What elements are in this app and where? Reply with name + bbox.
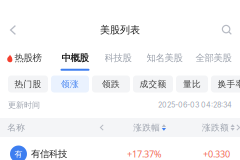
staticText: 全部美股 [195,52,231,64]
button[interactable]: 全部美股 [195,41,231,71]
staticText: +0.330 [203,148,230,160]
button[interactable]: 热门股 [8,75,48,92]
staticText: 换手率 [217,78,240,89]
staticText: 有信科技 [31,148,67,160]
staticText: 热股榜 [14,52,41,64]
staticText: 科技股 [104,52,131,64]
button[interactable]: 知名美股 [146,41,182,71]
staticText: 知名美股 [146,52,182,64]
button[interactable]: 中概股 [60,41,89,71]
staticText: 领跌 [102,78,120,89]
button[interactable]: 领涨 [51,75,89,92]
staticText: 更新时间 [8,100,40,110]
staticText: +17.37% [127,148,162,160]
button[interactable]: Back [2,18,24,42]
staticText: 成交额 [139,78,166,89]
button[interactable]: 量比 [176,75,208,92]
button[interactable]: 科技股 [103,41,132,71]
staticText: 涨跌幅 [133,122,160,133]
button[interactable]: Scroll columns left [99,118,104,137]
staticText: 领涨 [61,78,79,89]
button[interactable]: 成交额 [133,75,173,92]
button[interactable]: 涨跌幅 [133,118,166,137]
button[interactable]: 有 [0,137,240,160]
staticText: 热门股 [14,78,41,89]
staticText: 美股列表 [100,24,140,36]
staticText: 量比 [183,78,201,89]
staticText: 涨跌额 [202,122,229,133]
staticText: 名称 [7,122,25,133]
button[interactable]: Search [216,18,238,42]
staticText: 有 [14,149,22,159]
button[interactable]: Scroll columns right [236,118,240,137]
button[interactable]: 领跌 [92,75,130,92]
button[interactable]: 涨跌额 [202,118,235,137]
staticText: 中概股 [61,52,88,64]
button[interactable]: 热股榜 [7,41,41,71]
staticText: 2025-06-03 04:28:34 [158,101,232,109]
button[interactable]: 换手率 [211,75,240,92]
